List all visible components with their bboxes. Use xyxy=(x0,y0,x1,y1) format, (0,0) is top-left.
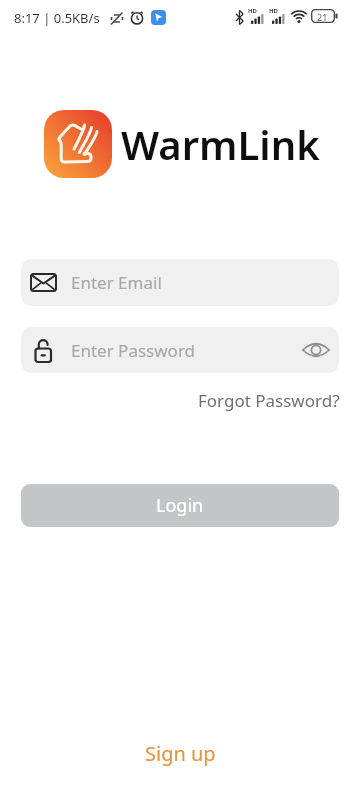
staticText: 21 xyxy=(317,11,328,23)
staticText: Enter Email xyxy=(71,271,162,294)
button[interactable]: Enter Password xyxy=(21,327,339,373)
staticText: 8:17 | 0.5KB/s xyxy=(14,9,100,27)
staticText: WarmLink xyxy=(121,117,320,171)
button[interactable] xyxy=(302,339,330,361)
staticText: HD xyxy=(248,7,257,15)
staticText: Enter Password xyxy=(71,339,196,362)
button[interactable]: Sign up xyxy=(145,740,216,767)
button[interactable]: Login xyxy=(21,484,339,527)
staticText: HD xyxy=(269,7,278,15)
staticText: Login xyxy=(156,493,204,518)
button[interactable]: Forgot Password? xyxy=(198,389,340,412)
button[interactable]: Enter Email xyxy=(21,259,339,306)
